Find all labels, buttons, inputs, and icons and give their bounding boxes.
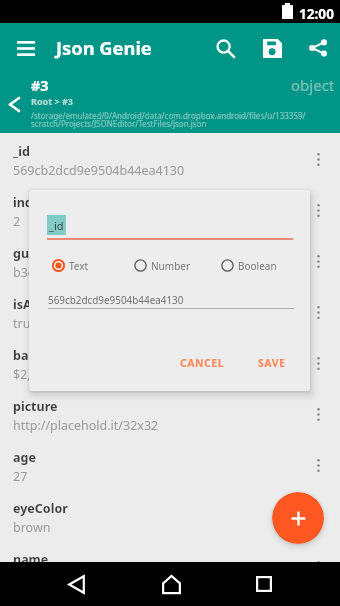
button[interactable]: Add <box>272 492 324 544</box>
button[interactable]: guid <box>0 241 340 292</box>
button[interactable]: Text <box>50 255 89 276</box>
button[interactable]: CANCEL <box>174 350 231 376</box>
button[interactable]: More options <box>307 556 329 578</box>
button[interactable]: age <box>0 445 340 496</box>
staticText: Text <box>69 259 89 273</box>
button[interactable]: name <box>0 547 340 598</box>
button[interactable]: More options <box>307 199 329 221</box>
staticText: Json Genie <box>56 35 152 60</box>
button[interactable]: Home <box>149 562 193 606</box>
button[interactable]: Save <box>250 26 294 70</box>
button[interactable]: SAVE <box>252 350 292 376</box>
staticText: Root > #3 <box>31 95 73 107</box>
button[interactable]: More options <box>307 352 329 374</box>
button[interactable]: Back <box>54 562 98 606</box>
button[interactable]: Number <box>132 255 191 276</box>
staticText: true <box>13 315 38 332</box>
button[interactable]: Menu <box>8 30 44 66</box>
button[interactable]: isActive <box>0 292 340 343</box>
staticText: /storage/emulated/0/Android/data/com.dro… <box>31 110 306 121</box>
staticText: SAVE <box>258 356 286 370</box>
staticText: eyeColor <box>13 500 68 517</box>
button[interactable]: eyeColor <box>0 496 340 547</box>
staticText: 12:00 <box>299 4 334 23</box>
button[interactable]: Back <box>0 90 28 118</box>
staticText: brown <box>13 519 51 536</box>
staticText: object <box>291 75 335 95</box>
staticText: CANCEL <box>180 356 225 370</box>
staticText: 569cb2dcd9e9504b44ea4130 <box>13 162 185 179</box>
button[interactable]: More options <box>307 454 329 476</box>
button[interactable]: Boolean <box>219 255 277 276</box>
staticText: age <box>13 449 36 466</box>
button[interactable]: More options <box>307 250 329 272</box>
staticText: 569cb2dcd9e9504b44ea4130 <box>48 293 184 306</box>
staticText: scratch/Projects/JSONEditor/TestFiles/js… <box>31 118 207 129</box>
staticText: #3 <box>31 75 49 95</box>
staticText: Rivera Weber <box>13 570 91 587</box>
button[interactable]: _id <box>0 139 340 190</box>
staticText: _id <box>13 143 30 160</box>
staticText: balance <box>13 347 62 364</box>
staticText: 27 <box>13 468 28 485</box>
staticText: _id <box>49 218 64 233</box>
staticText: $2,417.69 <box>13 366 70 383</box>
button[interactable]: Share <box>296 26 340 70</box>
button[interactable]: Search <box>203 26 247 70</box>
staticText: guid <box>13 245 41 262</box>
staticText: http://placehold.it/32x32 <box>13 417 159 434</box>
button[interactable]: More options <box>307 301 329 323</box>
button[interactable]: index <box>0 190 340 241</box>
staticText: b3c2a1f0-9d8e-4c7b-a6f5 <box>13 264 162 281</box>
staticText: 2 <box>13 213 21 230</box>
staticText: isActive <box>13 296 62 313</box>
staticText: name <box>13 551 49 568</box>
button[interactable]: picture <box>0 394 340 445</box>
button[interactable]: balance <box>0 343 340 394</box>
button[interactable]: More options <box>307 505 329 527</box>
button[interactable]: More options <box>307 403 329 425</box>
button[interactable]: Recents <box>242 562 286 606</box>
staticText: index <box>13 194 48 211</box>
staticText: Boolean <box>238 259 277 273</box>
button[interactable]: More options <box>307 148 329 170</box>
staticText: picture <box>13 398 58 415</box>
staticText: Number <box>151 259 191 273</box>
